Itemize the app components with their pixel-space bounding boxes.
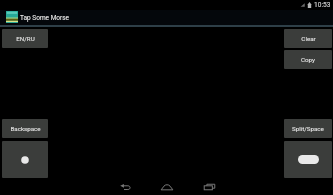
staticText: 10:53 — [314, 1, 331, 9]
button[interactable]: Dot — [2, 141, 48, 178]
button[interactable]: Dash — [284, 141, 332, 178]
button[interactable]: Recent apps — [188, 179, 230, 195]
staticText: Tap Some Morse — [20, 14, 70, 22]
button[interactable]: Backspace — [2, 119, 48, 138]
button[interactable]: Copy — [284, 50, 332, 69]
button[interactable]: EN/RU — [2, 29, 48, 48]
button[interactable]: Clear — [284, 29, 332, 48]
staticText: EN/RU — [16, 35, 35, 42]
button[interactable]: Back — [104, 179, 146, 195]
staticText: Split/Space — [292, 125, 324, 132]
button[interactable]: Home — [146, 179, 188, 195]
staticText: Backspace — [10, 125, 41, 132]
button[interactable]: Split/Space — [284, 119, 332, 138]
staticText: Copy — [301, 56, 315, 63]
staticText: Clear — [301, 35, 316, 42]
